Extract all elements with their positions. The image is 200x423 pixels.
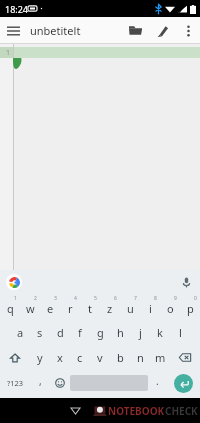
button[interactable]: . <box>148 370 167 396</box>
button[interactable]: , <box>31 370 50 396</box>
staticText: b <box>117 350 124 365</box>
button[interactable]: b <box>110 345 130 370</box>
staticText: 0 <box>194 295 197 302</box>
staticText: f <box>78 325 82 340</box>
staticText: NOTEBOOK <box>108 404 165 418</box>
button[interactable]: u <box>120 294 140 320</box>
staticText: 4 <box>74 295 77 302</box>
button[interactable]: Navigation menu <box>0 17 27 44</box>
staticText: 1 <box>6 48 11 58</box>
staticText: z <box>107 301 113 316</box>
staticText: p <box>187 301 194 316</box>
staticText: s <box>37 325 43 340</box>
button[interactable]: g <box>90 320 110 345</box>
button[interactable]: q <box>0 294 20 320</box>
button[interactable]: p <box>180 294 200 320</box>
staticText: n <box>137 350 144 365</box>
staticText: 7 <box>134 295 137 302</box>
staticText: 9 <box>174 295 177 302</box>
staticText: i <box>149 301 152 316</box>
button[interactable]: a <box>10 320 30 345</box>
staticText: . <box>156 374 159 388</box>
button[interactable]: Hide keyboard <box>64 400 86 422</box>
staticText: a <box>17 325 24 340</box>
button[interactable]: y <box>30 345 50 370</box>
staticText: ?123 <box>7 378 24 388</box>
button[interactable]: i <box>140 294 160 320</box>
button[interactable]: z <box>100 294 120 320</box>
staticText: k <box>157 325 163 340</box>
button[interactable]: More options <box>176 19 200 43</box>
button[interactable]: s <box>30 320 50 345</box>
staticText: r <box>68 301 73 316</box>
staticText: g <box>97 325 104 340</box>
button[interactable]: Google search <box>6 274 22 290</box>
staticText: 5 <box>94 295 97 302</box>
staticText: d <box>57 325 64 340</box>
staticText: 1 <box>14 295 17 302</box>
staticText: c <box>77 350 83 365</box>
staticText: 6 <box>114 295 117 302</box>
button[interactable]: Enter <box>167 370 200 396</box>
staticText: 3 <box>54 295 57 302</box>
staticText: y <box>37 350 43 365</box>
staticText: 2 <box>34 295 37 302</box>
button[interactable]: 1 <box>0 44 200 270</box>
button[interactable]: Backspace <box>170 345 200 370</box>
button[interactable]: c <box>70 345 90 370</box>
button[interactable]: v <box>90 345 110 370</box>
staticText: h <box>117 325 124 340</box>
staticText: x <box>57 350 63 365</box>
button[interactable]: h <box>110 320 130 345</box>
button[interactable]: Edit <box>149 17 176 44</box>
staticText: l <box>179 325 182 340</box>
button[interactable]: r <box>60 294 80 320</box>
staticText: 8 <box>154 295 157 302</box>
button[interactable]: x <box>50 345 70 370</box>
button[interactable]: j <box>130 320 150 345</box>
button[interactable]: Open folder <box>122 17 149 44</box>
button[interactable]: f <box>70 320 90 345</box>
staticText: , <box>39 374 42 388</box>
button[interactable]: k <box>150 320 170 345</box>
button[interactable]: Voice input <box>178 274 194 290</box>
staticText: 18:24 <box>5 3 29 15</box>
staticText: CHECK <box>165 404 198 418</box>
staticText: j <box>139 325 142 340</box>
staticText: unbetitelt <box>30 23 122 38</box>
button[interactable]: d <box>50 320 70 345</box>
staticText: w <box>26 301 35 316</box>
button[interactable]: m <box>150 345 170 370</box>
button[interactable]: e <box>40 294 60 320</box>
staticText: e <box>47 301 54 316</box>
button[interactable]: t <box>80 294 100 320</box>
staticText: u <box>127 301 134 316</box>
staticText: t <box>88 301 92 316</box>
button[interactable]: n <box>130 345 150 370</box>
staticText: q <box>7 301 14 316</box>
button[interactable]: l <box>170 320 190 345</box>
staticText: v <box>97 350 103 365</box>
button[interactable]: Shift <box>0 345 30 370</box>
button[interactable]: Emoji <box>50 370 70 396</box>
button[interactable]: w <box>20 294 40 320</box>
staticText: o <box>167 301 174 316</box>
button[interactable]: o <box>160 294 180 320</box>
button[interactable]: ?123 <box>0 370 31 396</box>
staticText: m <box>155 350 166 365</box>
